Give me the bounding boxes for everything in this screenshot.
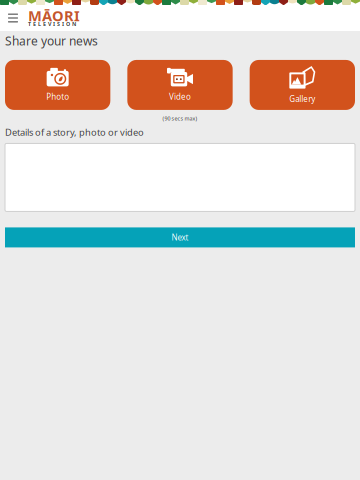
staticText: Gallery	[289, 94, 315, 104]
staticText: (90 secs max)	[162, 115, 197, 122]
staticText: Video	[169, 91, 191, 102]
staticText: T E L E V I S I O N	[28, 20, 76, 28]
staticText: MĀORI	[28, 6, 80, 25]
staticText: Share your news	[5, 33, 98, 49]
staticText: Details of a story, photo or video	[5, 126, 144, 138]
button[interactable]: Photo	[5, 60, 110, 110]
button[interactable]: Menu	[0, 5, 26, 31]
button[interactable]: Gallery	[250, 60, 355, 110]
button[interactable]: Next	[5, 227, 355, 247]
button[interactable]: Video	[127, 60, 233, 110]
staticText: Photo	[46, 91, 69, 102]
staticText: Next	[171, 232, 188, 243]
